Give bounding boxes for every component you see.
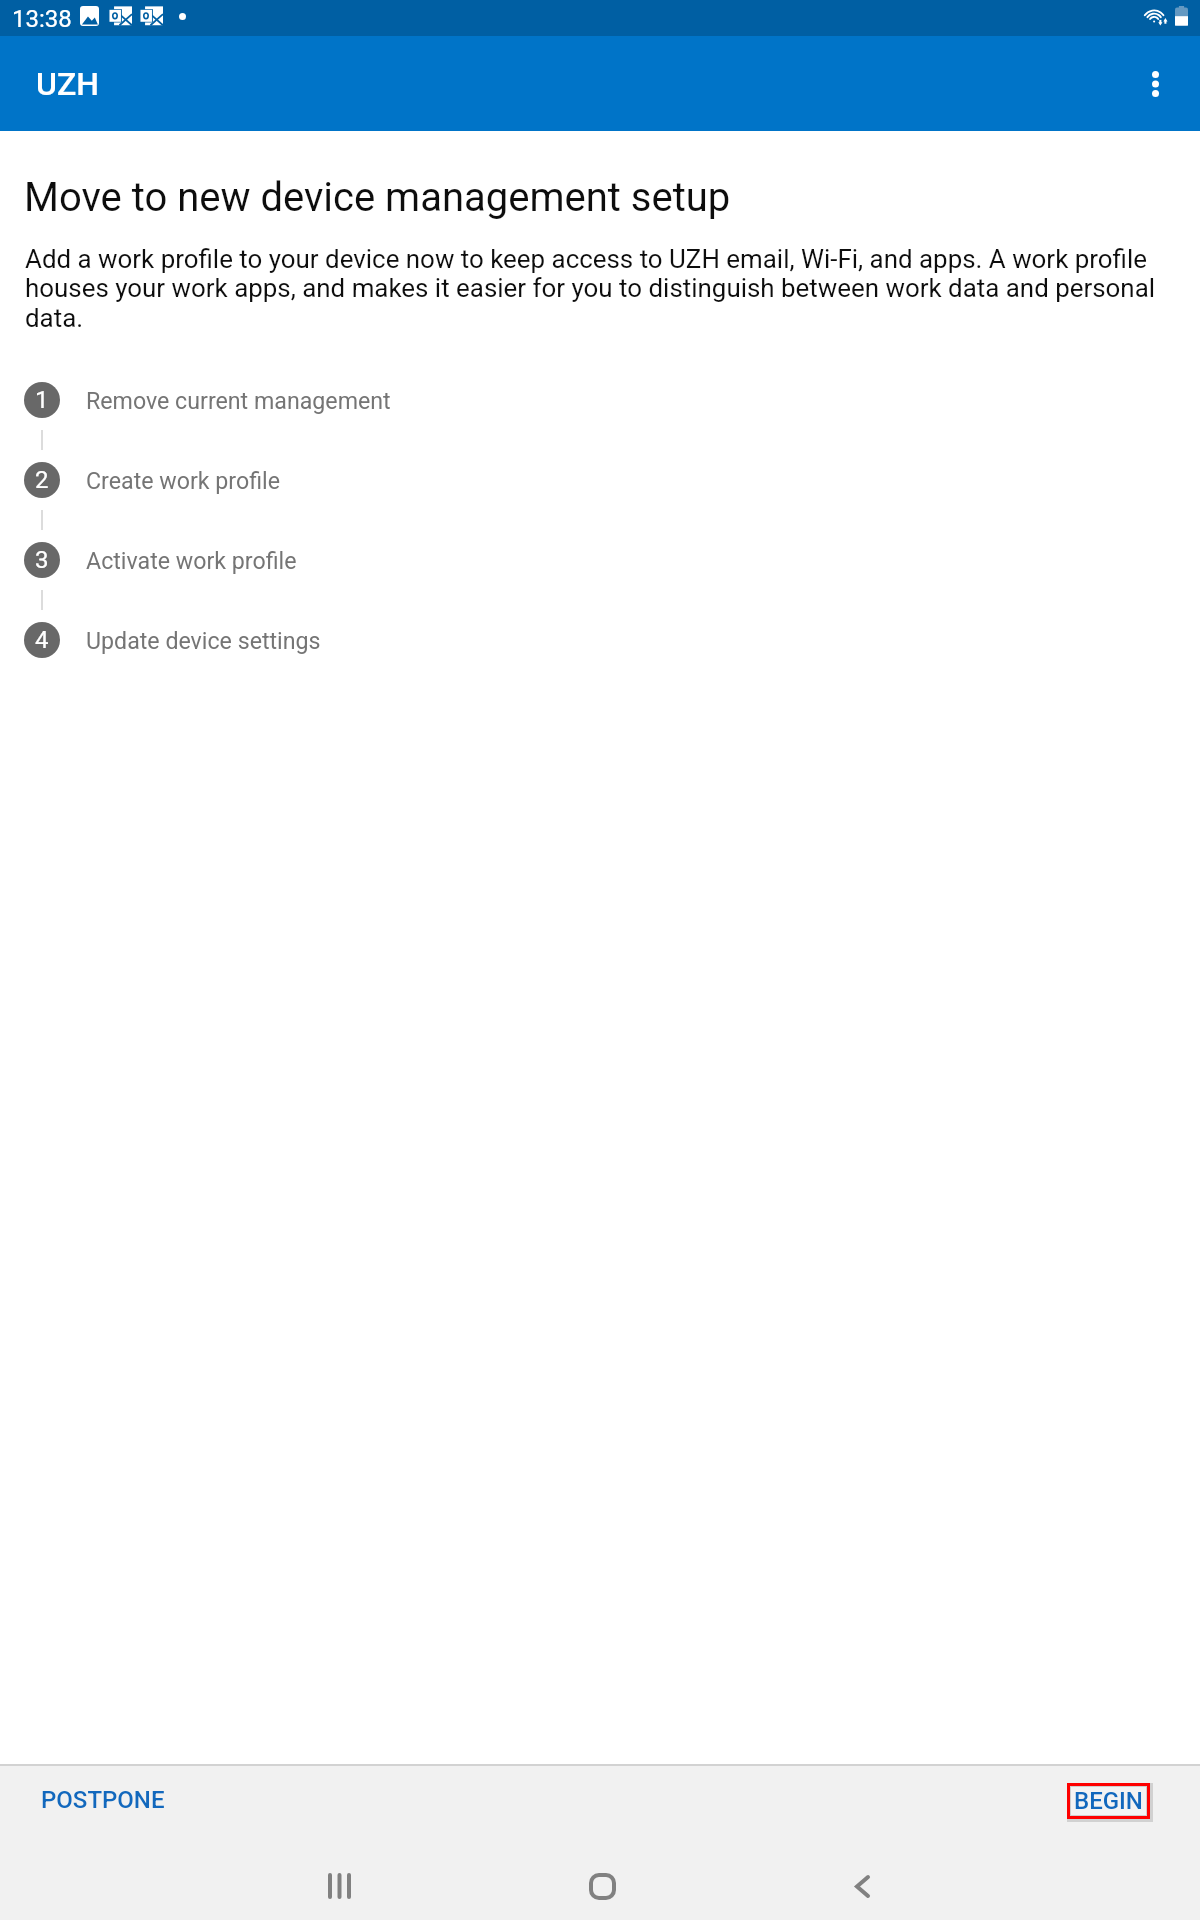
staticText: Create work profile	[86, 467, 280, 494]
staticText: 2	[35, 466, 49, 494]
staticText: 1	[35, 386, 49, 414]
button[interactable]: Back	[810, 1843, 915, 1920]
button[interactable]: Recents	[287, 1843, 392, 1920]
staticText: Move to new device management setup	[24, 174, 731, 221]
button[interactable]: More options	[1124, 53, 1186, 115]
button[interactable]: Home	[550, 1843, 655, 1920]
button[interactable]: BEGIN	[1071, 1787, 1146, 1815]
staticText: 3	[35, 546, 49, 574]
staticText: Activate work profile	[86, 547, 297, 574]
staticText: Add a work profile to your device now to…	[25, 244, 1175, 334]
staticText: Update device settings	[86, 627, 321, 654]
staticText: POSTPONE	[41, 1786, 165, 1814]
staticText: 4	[35, 626, 49, 654]
staticText: Remove current management	[86, 387, 391, 414]
button[interactable]: POSTPONE	[26, 1776, 180, 1824]
staticText: BEGIN	[1074, 1787, 1143, 1815]
staticText: UZH	[36, 65, 99, 103]
staticText: 13:38	[12, 5, 72, 33]
